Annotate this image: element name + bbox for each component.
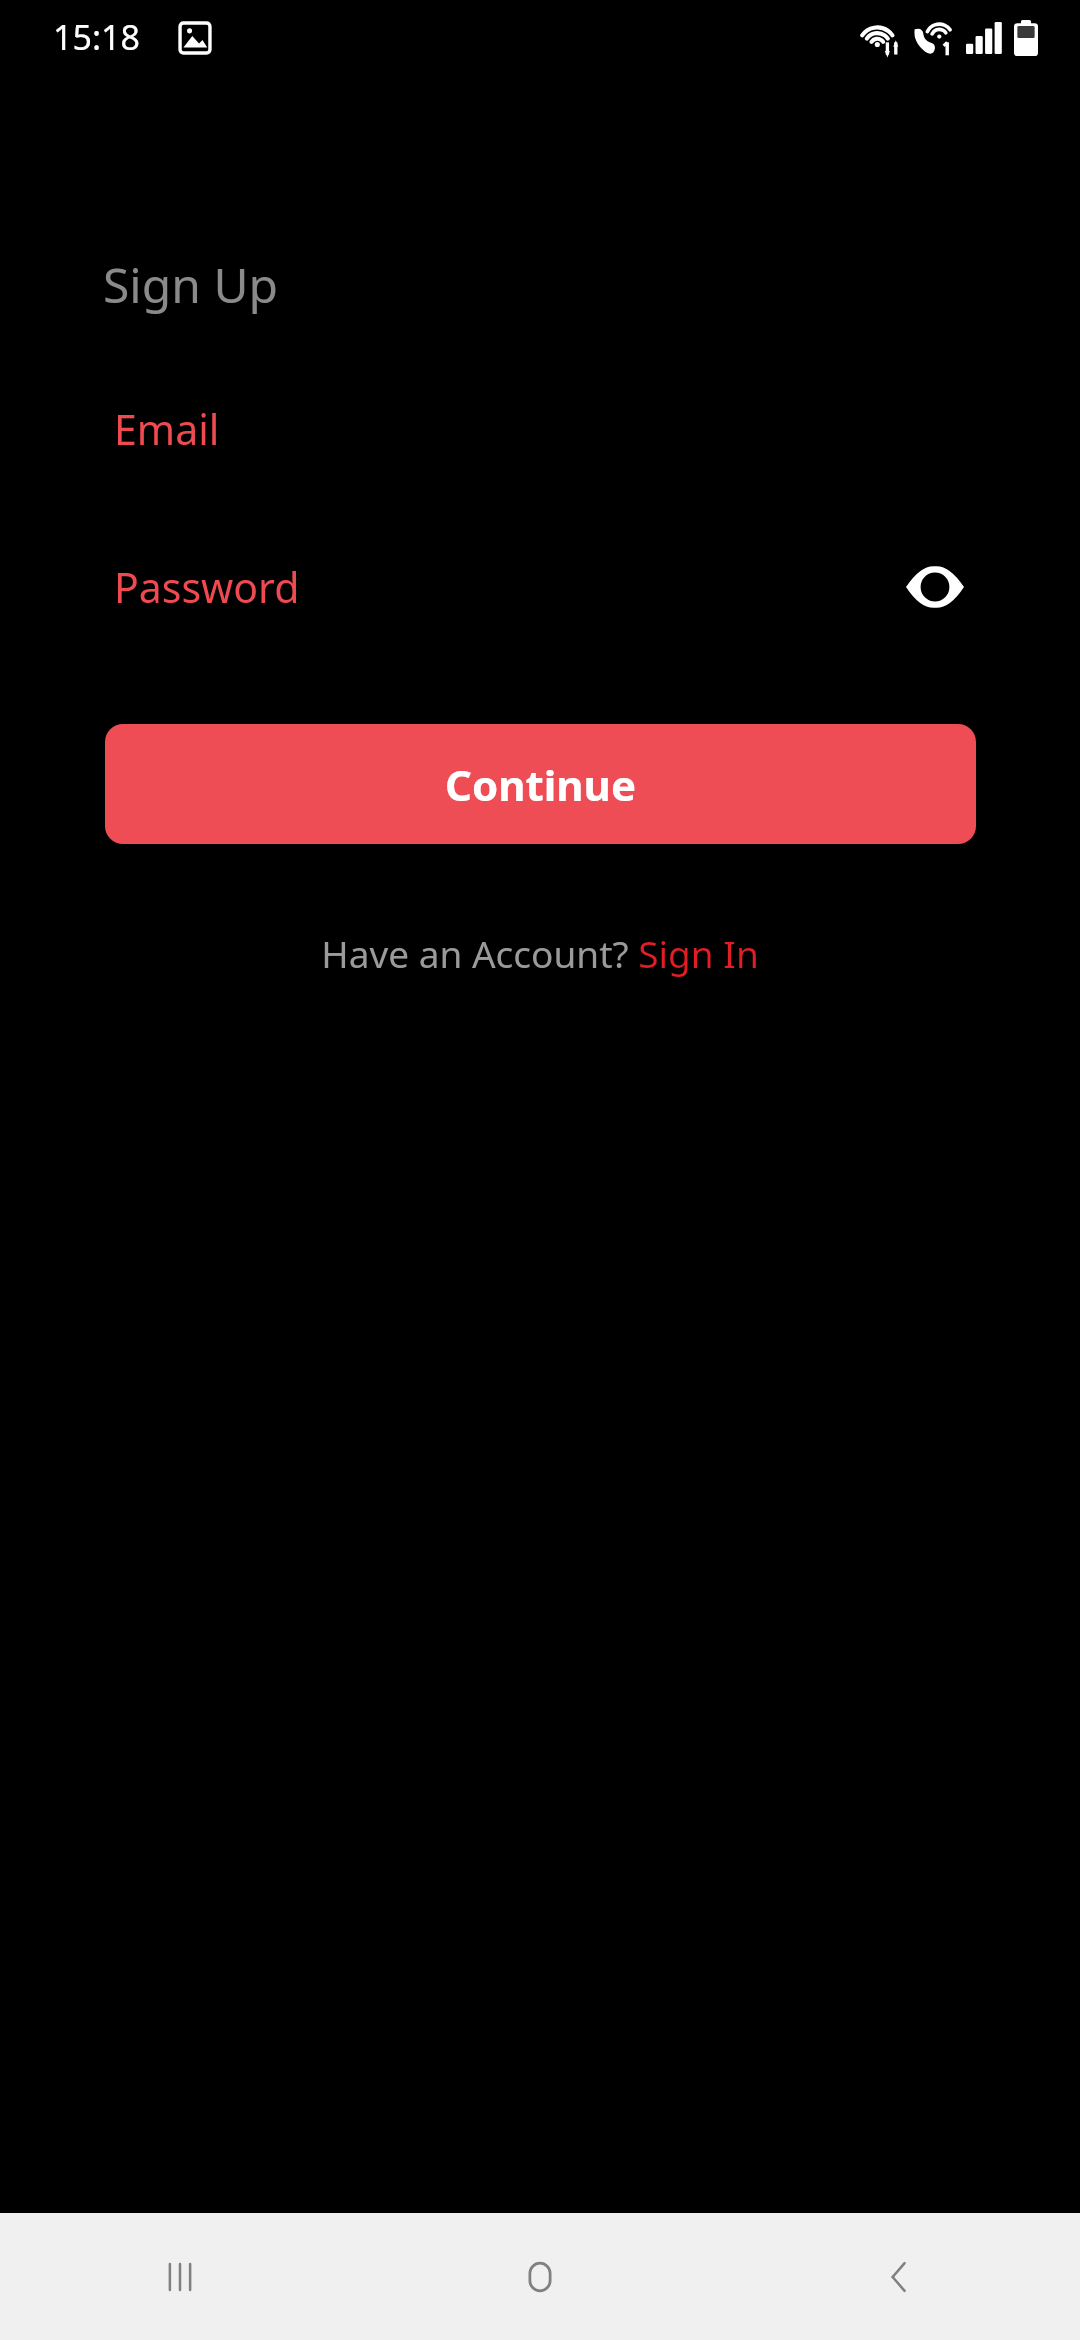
- button[interactable]: Home: [360, 2213, 720, 2340]
- button[interactable]: Show password: [903, 555, 967, 619]
- button[interactable]: Email: [0, 386, 1080, 472]
- button[interactable]: Recent apps: [0, 2213, 360, 2340]
- button[interactable]: Continue: [105, 724, 976, 844]
- button[interactable]: Password: [0, 544, 1080, 630]
- staticText: Sign Up: [103, 252, 279, 317]
- button[interactable]: Have an Account? Sign In: [0, 920, 1080, 986]
- staticText: Email: [114, 401, 220, 457]
- staticText: Have an Account? Sign In: [321, 928, 759, 978]
- staticText: Continue: [445, 756, 636, 813]
- staticText: 15:18: [53, 14, 140, 60]
- button[interactable]: Back: [720, 2213, 1080, 2340]
- staticText: Password: [114, 559, 300, 615]
